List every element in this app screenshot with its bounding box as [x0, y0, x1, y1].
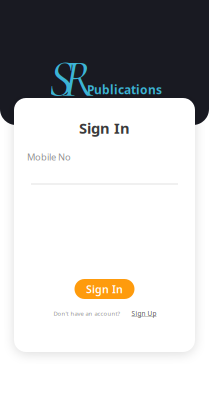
staticText: Publications: [87, 81, 162, 97]
staticText: Don't have an account?: [53, 309, 120, 317]
button[interactable]: Sign In: [74, 279, 134, 299]
button[interactable]: Sign Up: [131, 309, 156, 318]
staticText: Sign In: [79, 118, 130, 138]
staticText: SR: [48, 48, 94, 111]
staticText: Sign In: [86, 282, 123, 296]
staticText: Mobile No: [27, 151, 71, 163]
staticText: Sign Up: [131, 309, 156, 318]
